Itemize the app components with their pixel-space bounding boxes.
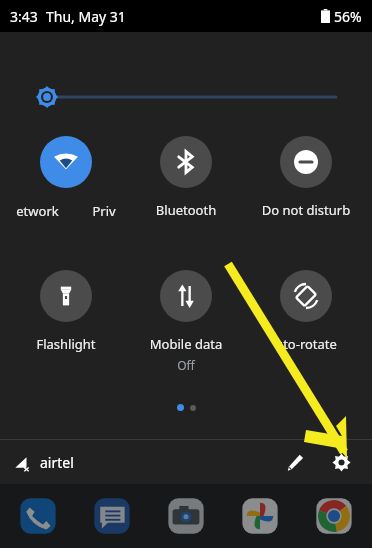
button[interactable]: Messages [90,494,134,538]
staticText: airtel [40,453,74,472]
button[interactable]: Photos [238,494,282,538]
button[interactable]: airtel [14,447,74,478]
button[interactable]: Mobile data [134,270,238,373]
staticText: Thu, May 31 [46,7,126,26]
button[interactable]: Tile [14,136,118,188]
button[interactable]: Phone [16,494,60,538]
button[interactable]: Do not disturb [254,136,358,219]
button[interactable]: Bluetooth [134,136,238,219]
staticText: etwork [16,202,59,220]
button[interactable]: uto-rotate [254,270,358,353]
staticText: Mobile data [134,335,238,353]
staticText: Bluetooth [134,201,238,219]
staticText: uto-rotate [254,335,358,353]
button[interactable]: Chrome [312,494,356,538]
staticText: 3:43 [10,7,38,26]
staticText: Off [134,357,238,373]
button[interactable]: Edit [278,445,312,479]
staticText: Priv [92,202,116,220]
button[interactable]: Camera [164,494,208,538]
button[interactable]: Flashlight [14,270,118,353]
staticText: Flashlight [14,335,118,353]
button[interactable]: Priv [64,202,144,220]
staticText: Do not disturb [254,201,358,219]
button[interactable]: etwork [0,202,77,220]
button[interactable]: Brightness [0,70,372,124]
staticText: 56% [334,7,362,26]
button[interactable]: Settings [324,445,358,479]
